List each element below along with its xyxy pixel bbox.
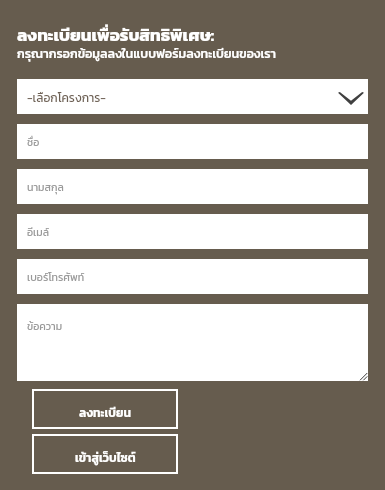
staticText: กรุณากรอกข้อมูลลงในแบบฟอร์มลงทะเบียนของเ… — [17, 44, 277, 63]
staticText: ลงทะเบียนเพื่อรับสิทธิพิเศษ: — [17, 22, 215, 47]
staticText: เบอร์โทรศัพท์ — [27, 269, 85, 285]
staticText: ลงทะเบียน — [79, 404, 131, 422]
staticText: ชื่อ — [27, 134, 40, 150]
staticText: นามสกุล — [27, 179, 64, 195]
button[interactable]: เบอร์โทรศัพท์ — [17, 259, 368, 294]
button[interactable]: ลงทะเบียน — [32, 389, 178, 429]
button[interactable]: ชื่อ — [17, 124, 368, 159]
button[interactable]: อีเมล์ — [17, 214, 368, 249]
button[interactable]: นามสกุล — [17, 169, 368, 204]
button[interactable]: เลือกโครงการ - Select project — [17, 79, 368, 114]
staticText: อีเมล์ — [27, 224, 50, 240]
button[interactable]: ข้อความ — [17, 304, 368, 381]
staticText: -เลือกโครงการ- — [27, 89, 106, 107]
staticText: ข้อความ — [27, 318, 63, 334]
staticText: เข้าสู่เว็บไซต์ — [75, 449, 136, 467]
button[interactable]: เข้าสู่เว็บไซต์ — [32, 434, 178, 474]
